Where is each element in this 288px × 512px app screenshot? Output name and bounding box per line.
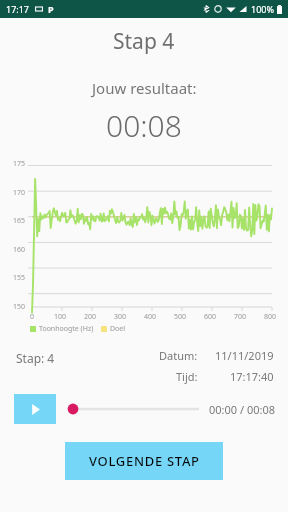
staticText: 175 — [13, 159, 26, 169]
staticText: Stap 4 — [113, 27, 175, 56]
staticText: Datum: — [159, 348, 198, 363]
staticText: 200 — [84, 312, 97, 322]
button[interactable]: VOLGENDE STAP — [65, 442, 223, 480]
staticText: 500 — [174, 312, 187, 322]
button[interactable]: Playback position — [66, 395, 201, 423]
staticText: 160 — [13, 245, 26, 255]
staticText: VOLGENDE STAP — [89, 452, 200, 470]
staticText: 165 — [13, 216, 26, 226]
staticText: 100 — [54, 312, 67, 322]
staticText: 0 — [30, 312, 35, 322]
staticText: 170 — [13, 188, 26, 198]
staticText: 155 — [13, 273, 26, 283]
staticText: Toonhoogte (Hz) — [39, 324, 94, 334]
staticText: P — [48, 3, 54, 15]
staticText: Jouw resultaat: — [92, 78, 197, 98]
staticText: Stap: 4 — [16, 350, 55, 366]
button[interactable]: Play — [14, 394, 56, 424]
staticText: 300 — [114, 312, 127, 322]
staticText: 150 — [13, 302, 26, 312]
staticText: Tijd: — [176, 369, 198, 384]
staticText: 800 — [264, 312, 277, 322]
staticText: 600 — [204, 312, 217, 322]
staticText: 00:08 — [106, 105, 182, 146]
staticText: 700 — [234, 312, 247, 322]
staticText: 400 — [144, 312, 157, 322]
staticText: 17:17:40 — [230, 369, 274, 384]
staticText: 00:00 / 00:08 — [209, 402, 276, 417]
staticText: Doel — [110, 324, 126, 334]
staticText: 100% — [251, 3, 274, 15]
staticText: 17:17 — [6, 3, 30, 15]
staticText: 11/11/2019 — [215, 348, 274, 363]
